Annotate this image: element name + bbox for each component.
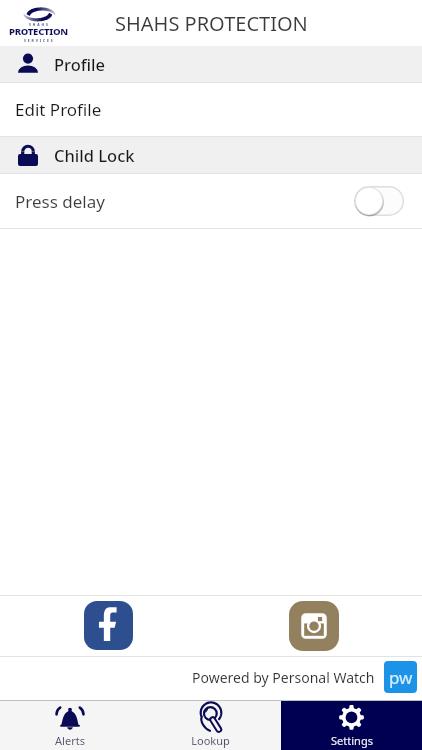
staticText: Powered by Personal Watch (192, 668, 375, 687)
staticText: Settings (331, 733, 373, 748)
button[interactable]: Lookup (140, 701, 281, 750)
staticText: Profile (54, 53, 106, 75)
button[interactable]: Press delay switch (354, 186, 404, 216)
button[interactable]: Instagram (289, 601, 339, 651)
staticText: Lookup (191, 733, 230, 748)
button[interactable]: Settings (281, 701, 422, 750)
button[interactable]: Profile (0, 46, 422, 82)
button[interactable]: Alerts (0, 701, 140, 750)
staticText: PROTECTION (9, 25, 68, 38)
button[interactable]: Personal Watch (384, 661, 417, 693)
staticText: Alerts (55, 733, 85, 748)
staticText: S E R V I C E S (24, 38, 54, 43)
staticText: S H A H S (29, 22, 49, 27)
staticText: pw (389, 666, 413, 689)
button[interactable]: Edit Profile (0, 83, 422, 136)
button[interactable]: Press delay (0, 174, 422, 228)
button[interactable]: Child Lock (0, 137, 422, 173)
staticText: Edit Profile (15, 98, 102, 121)
staticText: SHAHS PROTECTION (115, 10, 308, 37)
button[interactable]: Facebook (84, 601, 133, 650)
staticText: Child Lock (54, 144, 135, 166)
staticText: Press delay (15, 190, 105, 213)
button[interactable]: Shahs Protection Services logo (0, 0, 78, 46)
